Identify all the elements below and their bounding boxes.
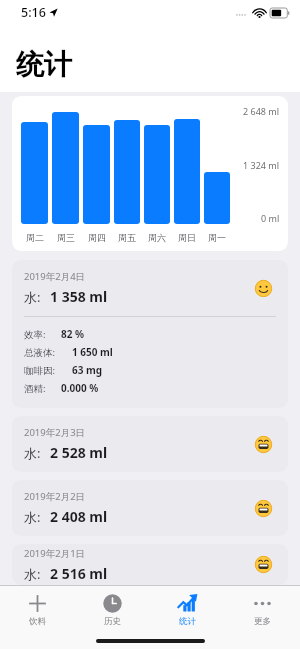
button[interactable]: 2019年2月2日 — [12, 480, 288, 536]
staticText: 1 358 ml — [50, 287, 108, 306]
staticText: 统计 — [179, 616, 196, 627]
other: 饮料 — [27, 593, 48, 614]
button[interactable]: 2019年2月1日 — [12, 544, 288, 585]
other: 更多 — [252, 593, 273, 614]
staticText: 效率: — [24, 328, 46, 341]
staticText: 2019年2月4日 — [24, 270, 86, 283]
staticText: 周五 — [118, 232, 136, 243]
staticText: 82 % — [61, 327, 85, 341]
staticText: 0 ml — [261, 212, 280, 224]
staticText: 水: — [24, 288, 41, 306]
staticText: 2 648 ml — [243, 105, 280, 117]
staticText: 1 650 ml — [72, 345, 113, 359]
other: 统计 — [177, 593, 198, 614]
staticText: 2019年2月3日 — [24, 426, 86, 439]
button[interactable]: 统计 — [150, 586, 225, 633]
staticText: 周日 — [178, 232, 196, 243]
staticText: 周六 — [148, 232, 166, 243]
staticText: 0.000 % — [61, 381, 99, 395]
other: 历史 — [102, 593, 123, 614]
staticText: 2019年2月2日 — [24, 490, 86, 503]
staticText: 饮料 — [29, 616, 46, 627]
staticText: 周四 — [88, 232, 106, 243]
staticText: 酒精: — [24, 382, 46, 395]
staticText: 2 528 ml — [50, 443, 108, 462]
staticText: 咖啡因: — [24, 364, 56, 377]
button[interactable]: 2019年2月3日 — [12, 416, 288, 472]
staticText: 63 mg — [72, 363, 103, 377]
staticText: 1 324 ml — [243, 159, 280, 171]
staticText: 水: — [24, 508, 41, 526]
staticText: 水: — [24, 444, 41, 462]
staticText: 总液体: — [24, 346, 56, 359]
button[interactable]: 更多 — [225, 586, 300, 633]
staticText: 周一 — [208, 232, 226, 243]
staticText: 5:16 — [21, 4, 46, 21]
staticText: 历史 — [104, 616, 121, 627]
button[interactable]: 饮料 — [0, 586, 75, 633]
staticText: 2019年2月1日 — [24, 547, 86, 560]
staticText: 2 516 ml — [50, 564, 108, 583]
staticText: 周二 — [26, 232, 44, 243]
staticText: 2 408 ml — [50, 507, 108, 526]
staticText: 更多 — [254, 616, 271, 627]
staticText: 周三 — [57, 232, 75, 243]
button[interactable]: 2019年2月4日 — [12, 260, 288, 408]
button[interactable]: 历史 — [75, 586, 150, 633]
staticText: 水: — [24, 565, 41, 583]
staticText: 统计 — [16, 47, 72, 82]
